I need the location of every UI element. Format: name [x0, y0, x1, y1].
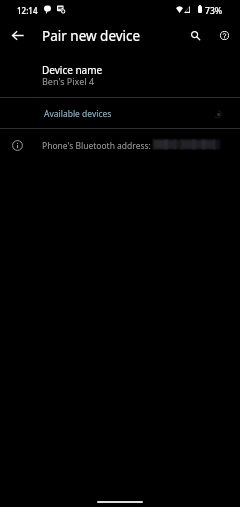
button[interactable]: Search	[183, 23, 208, 48]
staticText: 12:14	[17, 5, 38, 16]
button[interactable]: Help	[212, 23, 237, 48]
staticText: Available devices	[44, 108, 112, 120]
button[interactable]: Phone's Bluetooth address:	[0, 129, 240, 161]
button[interactable]: Navigate up	[5, 23, 30, 48]
staticText: Pair new device	[42, 27, 141, 45]
staticText: Device name	[42, 63, 103, 77]
staticText: 73%	[205, 5, 223, 17]
staticText: Phone's Bluetooth address:	[42, 140, 151, 152]
button[interactable]: Device name	[0, 56, 240, 97]
staticText: Ben's Pixel 4	[42, 75, 95, 87]
